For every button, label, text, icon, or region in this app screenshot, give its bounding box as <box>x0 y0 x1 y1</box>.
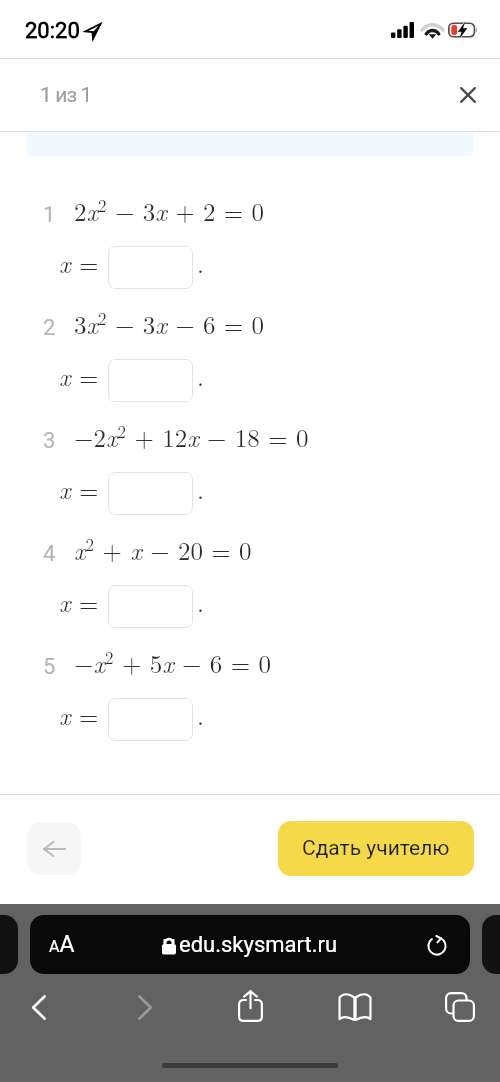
button[interactable]: Answer input 4 <box>108 585 193 628</box>
staticText: 1 из 1 <box>40 83 92 108</box>
staticText: 2 <box>43 315 56 341</box>
staticText: x = <box>59 584 99 619</box>
button[interactable]: Back <box>7 981 71 1033</box>
staticText: . <box>197 584 204 619</box>
button[interactable]: Reload <box>422 930 452 960</box>
staticText: 20:20 <box>25 18 80 44</box>
button[interactable]: Close <box>446 73 490 117</box>
button[interactable]: Answer input 2 <box>108 359 193 402</box>
button[interactable]: Answer input 5 <box>108 698 193 741</box>
button[interactable]: Forward <box>113 981 177 1033</box>
staticText: . <box>197 358 204 393</box>
staticText: x = <box>59 358 99 393</box>
staticText: . <box>197 471 204 506</box>
staticText: 2x2 − 3x + 2 = 0 <box>74 193 265 229</box>
button[interactable]: AA <box>30 915 470 974</box>
staticText: 3 <box>43 428 56 454</box>
staticText: x = <box>59 471 99 506</box>
staticText: 1 <box>43 202 56 228</box>
button[interactable]: Answer input 3 <box>108 472 193 515</box>
staticText: −2x2 + 12x − 18 = 0 <box>74 419 309 455</box>
button[interactable]: Answer input 1 <box>108 246 193 289</box>
staticText: . <box>197 697 204 732</box>
button[interactable]: Сдать учителю <box>278 821 474 876</box>
staticText: x2 + x − 20 = 0 <box>74 532 252 568</box>
staticText: AA <box>49 931 75 958</box>
button[interactable]: Share <box>218 979 282 1031</box>
staticText: x = <box>59 697 99 732</box>
button[interactable]: Bookmarks <box>323 981 387 1033</box>
button[interactable]: Tabs <box>428 981 492 1033</box>
button[interactable]: Previous <box>27 822 81 875</box>
staticText: 3x2 − 3x − 6 = 0 <box>74 306 265 342</box>
staticText: −x2 + 5x − 6 = 0 <box>74 645 271 681</box>
staticText: Сдать учителю <box>302 836 450 861</box>
staticText: 5 <box>43 654 56 680</box>
staticText: 4 <box>43 541 56 567</box>
staticText: edu.skysmart.ru <box>179 932 338 958</box>
staticText: x = <box>59 245 99 280</box>
staticText: . <box>197 245 204 280</box>
